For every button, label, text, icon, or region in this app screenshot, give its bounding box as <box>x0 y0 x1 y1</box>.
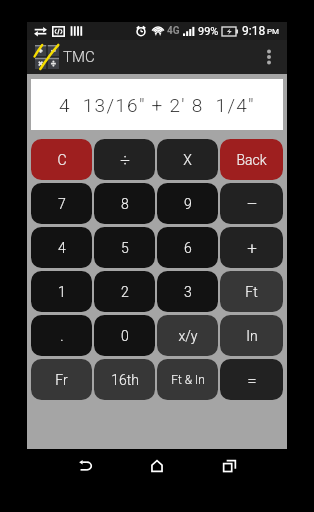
button[interactable]: ÷ <box>94 139 155 180</box>
staticText: x/y <box>178 328 198 344</box>
staticText: 9 <box>184 196 192 212</box>
staticText: – <box>246 194 258 214</box>
button[interactable]: 8 <box>94 183 155 224</box>
button[interactable]: Fr <box>31 359 92 400</box>
button[interactable]: 7 <box>31 183 92 224</box>
staticText: 4G <box>167 25 180 37</box>
button[interactable]: In <box>220 315 283 356</box>
button[interactable]: Back <box>220 139 283 180</box>
staticText: 4 13/16" + 2' 8 1/4" <box>59 94 255 116</box>
staticText: 6 <box>184 240 192 256</box>
button[interactable]: 6 <box>157 227 218 268</box>
button[interactable]: + <box>220 227 283 268</box>
button[interactable]: Ft & In <box>157 359 218 400</box>
staticText: TMC <box>63 48 95 66</box>
button[interactable]: x/y <box>157 315 218 356</box>
staticText: 1 <box>58 284 66 300</box>
staticText: Back <box>236 152 267 168</box>
button[interactable]: 16th <box>94 359 155 400</box>
staticText: In <box>246 328 258 344</box>
button[interactable]: Ft <box>220 271 283 312</box>
staticText: 2 <box>121 284 129 300</box>
staticText: 7 <box>58 196 66 212</box>
button[interactable]: 3 <box>157 271 218 312</box>
staticText: PM <box>267 27 280 36</box>
staticText: 0 <box>121 328 129 344</box>
button[interactable]: = <box>220 359 283 400</box>
staticText: X <box>183 152 192 168</box>
button[interactable]: 2 <box>94 271 155 312</box>
button[interactable]: X <box>157 139 218 180</box>
staticText: = <box>247 370 257 390</box>
staticText: C <box>57 152 67 168</box>
button[interactable]: 4 <box>31 227 92 268</box>
button[interactable]: 5 <box>94 227 155 268</box>
button[interactable]: Back <box>61 451 109 481</box>
staticText: 99% <box>198 25 219 38</box>
staticText: . <box>60 328 64 344</box>
staticText: ÷ <box>120 150 130 170</box>
staticText: Fr <box>55 372 68 388</box>
button[interactable]: – <box>220 183 283 224</box>
button[interactable]: More options <box>257 45 281 69</box>
button[interactable]: 1 <box>31 271 92 312</box>
button[interactable]: Recents <box>205 451 253 481</box>
button[interactable]: 0 <box>94 315 155 356</box>
button[interactable]: 9 <box>157 183 218 224</box>
staticText: 8 <box>121 196 129 212</box>
button[interactable]: C <box>31 139 92 180</box>
button[interactable]: . <box>31 315 92 356</box>
button[interactable]: Home <box>133 451 181 481</box>
staticText: 4 <box>58 240 66 256</box>
staticText: 16th <box>111 372 139 388</box>
staticText: 5 <box>121 240 129 256</box>
staticText: + <box>247 238 257 258</box>
staticText: Ft & In <box>171 373 205 387</box>
staticText: 9:18 <box>242 24 266 38</box>
staticText: 3 <box>184 284 192 300</box>
staticText: Ft <box>245 284 258 300</box>
